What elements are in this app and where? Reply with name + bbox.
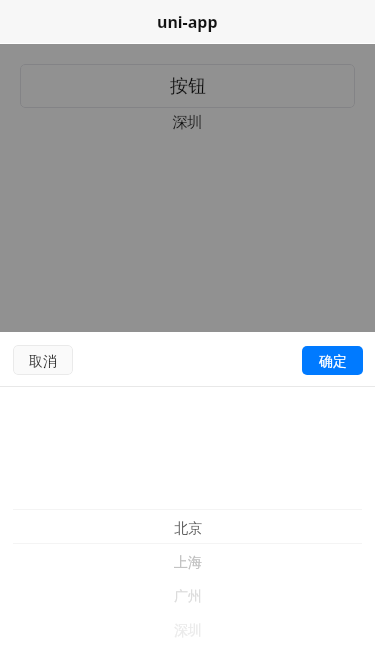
staticText: uni-app — [157, 11, 218, 33]
staticText: 深圳 — [0, 113, 375, 132]
staticText: 北京 — [174, 520, 202, 538]
button[interactable]: 北京 — [0, 510, 375, 543]
button[interactable]: 确定 — [302, 346, 363, 375]
staticText: 按钮 — [170, 75, 206, 98]
staticText: 广州 — [174, 588, 202, 606]
button[interactable]: 按钮 — [20, 64, 355, 108]
button[interactable]: 取消 — [13, 345, 73, 375]
staticText: 深圳 — [174, 622, 202, 640]
staticText: 确定 — [319, 353, 347, 371]
staticText: 取消 — [29, 353, 57, 371]
staticText: 上海 — [174, 554, 202, 572]
button[interactable]: 上海 — [0, 544, 375, 578]
